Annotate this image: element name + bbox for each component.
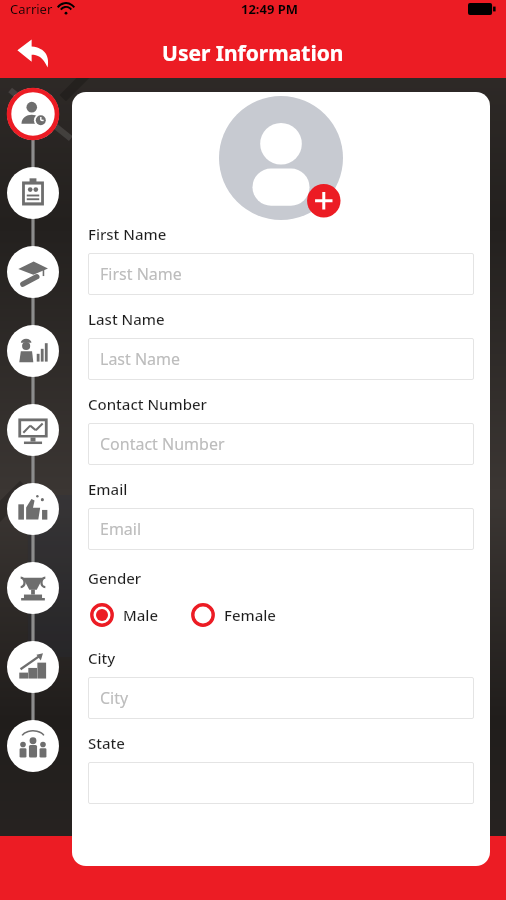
button[interactable]: Last Name [88,338,474,380]
button[interactable]: Section 6 [0,483,66,562]
staticText: Male [123,605,159,625]
staticText: Last Name [100,348,181,370]
button[interactable]: City [88,677,474,719]
staticText: City [88,648,116,668]
staticText: Email [88,479,128,499]
button[interactable]: Contact Number [88,423,474,465]
button[interactable]: Section 1 [0,88,66,167]
button[interactable]: Section 8 [0,641,66,720]
button[interactable]: Back [6,28,60,78]
staticText: Gender [88,568,142,588]
staticText: First Name [100,263,182,285]
staticText: Email [100,518,142,540]
staticText: Last Name [88,309,165,329]
staticText: User Information [162,39,344,68]
staticText: State [88,733,125,753]
staticText: Contact Number [100,433,225,455]
staticText: Carrier [10,0,53,18]
button[interactable]: Section 5 [0,404,66,483]
button[interactable]: Section 7 [0,562,66,641]
button[interactable]: Section 2 [0,167,66,246]
button[interactable]: First Name [88,253,474,295]
button[interactable]: Section 3 [0,246,66,325]
button[interactable]: Add profile photo [219,96,343,220]
button[interactable] [88,762,474,804]
button[interactable]: Male [88,601,161,629]
button[interactable]: Section 9 [0,720,66,799]
staticText: Contact Number [88,394,207,414]
button[interactable]: Email [88,508,474,550]
button[interactable]: Section 4 [0,325,66,404]
staticText: Female [224,605,276,625]
staticText: City [100,687,129,709]
button[interactable]: Female [189,601,278,629]
staticText: 12:49 PM [241,0,299,18]
staticText: First Name [88,224,167,244]
